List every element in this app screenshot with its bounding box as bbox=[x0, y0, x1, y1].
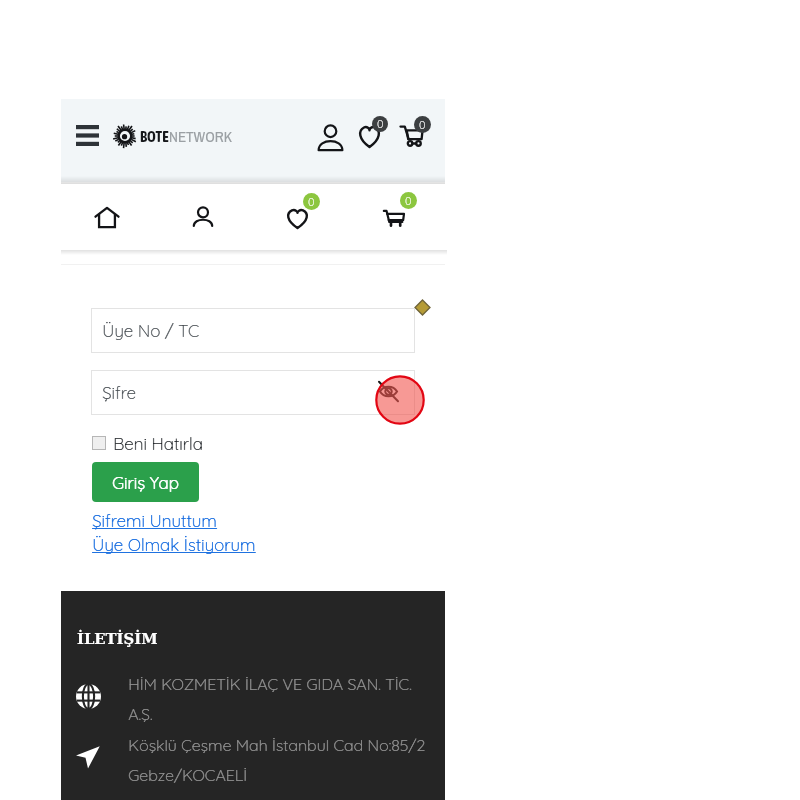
staticText: 0 bbox=[377, 117, 384, 131]
staticText: NETWORK bbox=[169, 126, 232, 146]
button[interactable]: Üye Olmak İstiyorum bbox=[92, 534, 256, 555]
staticText: 0 bbox=[308, 195, 315, 209]
staticText: Köşklü Çeşme Mah İstanbul Cad No:85/2 Ge… bbox=[128, 735, 433, 785]
staticText: 0 bbox=[405, 194, 412, 208]
button[interactable]: Üye No / TC bbox=[91, 308, 415, 353]
staticText: Şifre bbox=[102, 382, 136, 403]
staticText: BOTE bbox=[140, 128, 169, 145]
button[interactable]: Favorites bbox=[261, 183, 357, 250]
button[interactable]: Favorites bbox=[354, 112, 392, 150]
button[interactable]: Cart bbox=[396, 112, 434, 150]
button[interactable]: Account bbox=[310, 118, 350, 158]
button[interactable]: Home bbox=[69, 183, 165, 250]
staticText: Beni Hatırla bbox=[113, 433, 203, 454]
button[interactable]: Cart bbox=[357, 183, 453, 250]
button[interactable]: BOTE bbox=[113, 124, 232, 148]
button[interactable]: Account bbox=[165, 183, 261, 250]
button[interactable]: Şifre bbox=[91, 370, 415, 415]
button[interactable]: Menu bbox=[68, 116, 106, 154]
staticText: Giriş Yap bbox=[112, 472, 179, 493]
button[interactable]: Şifremi Unuttum bbox=[92, 510, 217, 531]
staticText: Üye No / TC bbox=[102, 320, 199, 341]
button[interactable]: Show password bbox=[371, 377, 407, 407]
staticText: HİM KOZMETİK İLAÇ VE GIDA SAN. TİC. A.Ş. bbox=[128, 674, 433, 724]
button[interactable]: Giriş Yap bbox=[92, 462, 199, 502]
button[interactable]: Beni Hatırla bbox=[92, 432, 203, 454]
staticText: İLETİŞİM bbox=[77, 630, 158, 647]
staticText: 0 bbox=[419, 118, 426, 132]
